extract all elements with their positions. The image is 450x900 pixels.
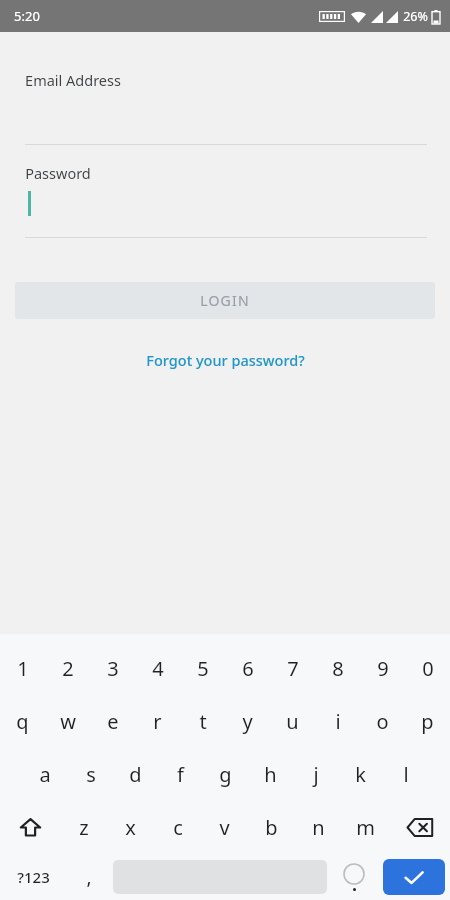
staticText: g [219, 761, 232, 788]
staticText: d [129, 761, 142, 788]
staticText: q [16, 708, 29, 735]
button[interactable]: ?123 [0, 854, 67, 900]
staticText: o [376, 708, 389, 735]
staticText: b [265, 814, 278, 841]
staticText: 26% [403, 8, 428, 25]
button[interactable]: Password [0, 163, 450, 238]
staticText: Email Address [25, 70, 121, 90]
staticText: 7 [287, 655, 299, 682]
button[interactable]: n [295, 801, 342, 854]
button[interactable]: j [293, 748, 338, 801]
staticText: 6 [242, 655, 254, 682]
staticText: m [356, 814, 375, 841]
staticText: w [60, 708, 76, 735]
button[interactable]: i [315, 695, 360, 748]
staticText: n [312, 814, 325, 841]
staticText: k [355, 761, 366, 788]
button[interactable]: Email Address [0, 70, 450, 145]
staticText: 5 [197, 655, 209, 682]
staticText: z [79, 814, 89, 841]
button[interactable]: 9 [360, 642, 405, 695]
button[interactable] [330, 854, 378, 900]
staticText: h [264, 761, 277, 788]
staticText: r [153, 708, 162, 735]
staticText: 2 [62, 655, 74, 682]
button[interactable]: LOGIN [15, 282, 435, 319]
button[interactable]: k [338, 748, 383, 801]
button[interactable]: m [342, 801, 389, 854]
button[interactable]: o [360, 695, 405, 748]
button[interactable]: 1 [0, 642, 45, 695]
button[interactable]: 2 [45, 642, 90, 695]
button[interactable]: b [248, 801, 295, 854]
button[interactable]: l [383, 748, 428, 801]
button[interactable]: 3 [90, 642, 135, 695]
button[interactable]: q [0, 695, 45, 748]
button[interactable]: x [107, 801, 154, 854]
staticText: 8 [332, 655, 344, 682]
staticText: y [242, 708, 253, 735]
button[interactable]: g [203, 748, 248, 801]
button[interactable]: w [45, 695, 90, 748]
button[interactable]: h [248, 748, 293, 801]
button[interactable]: Enter [383, 859, 445, 895]
button[interactable]: r [135, 695, 180, 748]
button[interactable]: f [158, 748, 203, 801]
button[interactable]: 5 [180, 642, 225, 695]
staticText: 5:20 [14, 7, 40, 25]
button[interactable]: p [405, 695, 450, 748]
staticText: t [199, 708, 207, 735]
button[interactable]: 7 [270, 642, 315, 695]
button[interactable]: z [60, 801, 107, 854]
button[interactable]: t [180, 695, 225, 748]
button[interactable]: u [270, 695, 315, 748]
staticText: 1 [17, 655, 29, 682]
staticText: Password [25, 163, 91, 183]
staticText: e [107, 708, 119, 735]
button[interactable]: , [67, 854, 110, 900]
button[interactable]: v [201, 801, 248, 854]
button[interactable]: e [90, 695, 135, 748]
staticText: l [403, 761, 409, 788]
staticText: f [177, 761, 184, 788]
button[interactable]: 8 [315, 642, 360, 695]
button[interactable]: y [225, 695, 270, 748]
button[interactable]: Shift [0, 801, 60, 854]
staticText: i [335, 708, 341, 735]
staticText: 3 [107, 655, 119, 682]
button[interactable]: c [154, 801, 201, 854]
staticText: 4 [152, 655, 164, 682]
staticText: ?123 [17, 867, 50, 887]
button[interactable]: Forgot your password? [134, 344, 317, 376]
button[interactable]: d [113, 748, 158, 801]
staticText: j [313, 761, 319, 788]
staticText: u [286, 708, 299, 735]
staticText: a [39, 761, 51, 788]
button[interactable]: 4 [135, 642, 180, 695]
staticText: c [173, 814, 183, 841]
staticText: p [421, 708, 434, 735]
staticText: Forgot your password? [146, 350, 305, 370]
staticText: , [86, 864, 92, 890]
button[interactable]: a [22, 748, 68, 801]
staticText: v [219, 814, 230, 841]
staticText: x [125, 814, 136, 841]
staticText: 9 [377, 655, 389, 682]
staticText: 0 [422, 655, 434, 682]
button[interactable]: s [68, 748, 113, 801]
staticText: LOGIN [200, 291, 250, 310]
staticText: s [86, 761, 96, 788]
button[interactable]: Backspace [389, 801, 450, 854]
button[interactable]: 6 [225, 642, 270, 695]
button[interactable]: 0 [405, 642, 450, 695]
